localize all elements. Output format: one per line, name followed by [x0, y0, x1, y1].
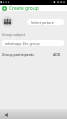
- staticText: Group participants: [2, 52, 35, 57]
- button[interactable]: Select group photo: [2, 16, 13, 27]
- staticText: Group subject: [2, 32, 26, 37]
- button[interactable]: ADD: [53, 52, 61, 57]
- staticText: Create group: [9, 5, 39, 11]
- button[interactable]: whatsapp-like group: [2, 40, 64, 46]
- button[interactable]: Back: [3, 112, 8, 117]
- button[interactable]: Create group: [0, 5, 67, 11]
- staticText: Select picture: [31, 20, 54, 25]
- button[interactable]: Select picture: [27, 19, 64, 25]
- staticText: whatsapp-like group: [5, 41, 40, 46]
